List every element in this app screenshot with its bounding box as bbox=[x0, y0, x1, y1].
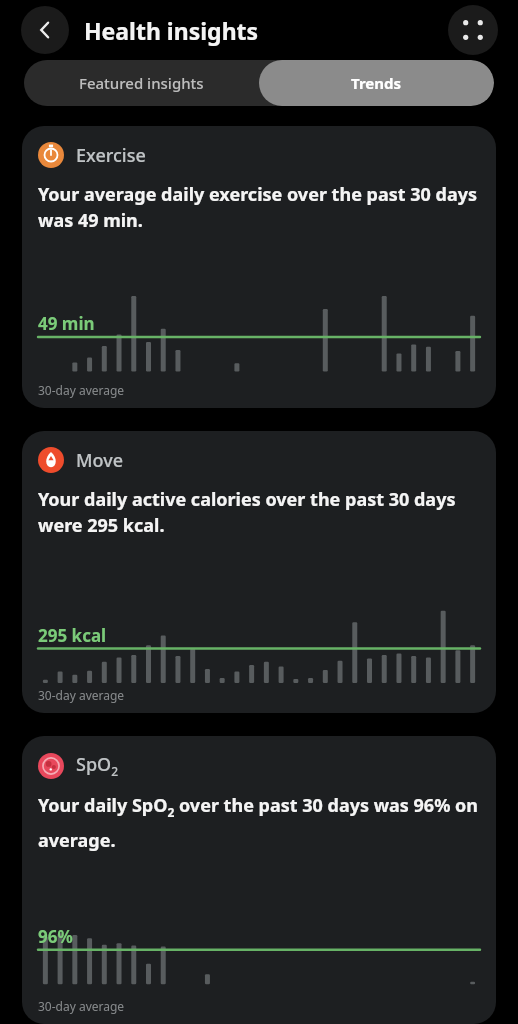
staticText: 96% bbox=[38, 925, 73, 948]
staticText: Your daily SpO2 over the past 30 days wa… bbox=[38, 793, 480, 853]
staticText: Exercise bbox=[76, 143, 146, 168]
button[interactable]: Exercise trend bbox=[22, 126, 496, 408]
staticText: 30-day average bbox=[38, 382, 125, 398]
staticText: 295 kcal bbox=[38, 624, 107, 647]
staticText: 49 min bbox=[38, 312, 95, 335]
button[interactable]: Back bbox=[21, 6, 69, 54]
button[interactable]: Featured insights bbox=[24, 60, 259, 106]
staticText: 30-day average bbox=[38, 687, 125, 703]
button[interactable]: SpO2 trend bbox=[22, 736, 496, 1024]
button[interactable]: Trends bbox=[259, 60, 494, 106]
staticText: Your daily active calories over the past… bbox=[38, 487, 480, 538]
button[interactable]: More options bbox=[448, 5, 498, 55]
staticText: Health insights bbox=[84, 15, 259, 46]
staticText: SpO2 bbox=[76, 752, 119, 779]
staticText: Your average daily exercise over the pas… bbox=[38, 182, 480, 233]
button[interactable]: Move trend bbox=[22, 431, 496, 713]
staticText: 30-day average bbox=[38, 998, 125, 1014]
staticText: Trends bbox=[351, 73, 402, 93]
staticText: Featured insights bbox=[79, 73, 204, 93]
staticText: Move bbox=[76, 448, 123, 473]
